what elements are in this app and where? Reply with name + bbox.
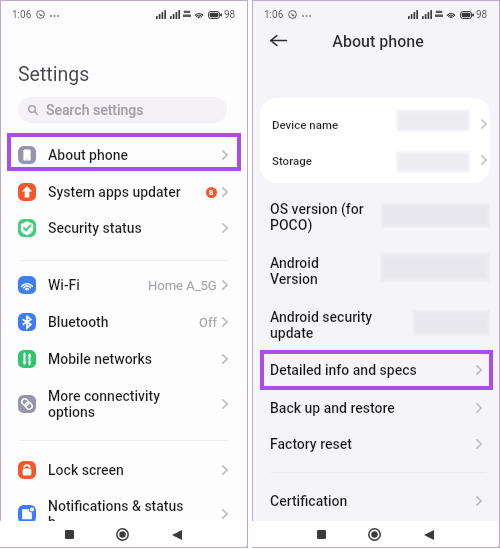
staticText: About phone	[48, 147, 222, 163]
button[interactable]: Notifications & status b	[18, 497, 228, 531]
staticText: About phone	[332, 32, 424, 51]
staticText: Certification	[270, 493, 476, 509]
button[interactable]: Bluetooth	[18, 305, 228, 339]
button[interactable]: Factory reset	[270, 428, 482, 460]
button[interactable]: System apps updater	[18, 175, 228, 209]
button[interactable]: Home	[111, 523, 134, 546]
button[interactable]: Wi-Fi	[18, 268, 228, 302]
staticText: Notifications & status b	[48, 498, 222, 530]
button[interactable]: Home	[363, 523, 386, 546]
staticText: 8	[209, 188, 214, 197]
button[interactable]: Back	[417, 523, 440, 546]
staticText: Search settings	[46, 102, 144, 118]
button[interactable]: Android Version	[270, 255, 390, 287]
button[interactable]: OS version (for POCO)	[270, 201, 390, 233]
button[interactable]: Recent apps	[58, 523, 81, 546]
button[interactable]: Back	[266, 28, 290, 52]
staticText: 1:06	[264, 9, 284, 21]
button[interactable]: Mobile networks	[18, 342, 228, 376]
staticText: Back up and restore	[270, 400, 476, 416]
button[interactable]: Search settings	[18, 97, 227, 123]
button[interactable]: Android security update	[270, 309, 390, 341]
button[interactable]: Lock screen	[18, 453, 228, 487]
staticText: Factory reset	[270, 436, 476, 452]
button[interactable]: More connectivity options	[18, 387, 228, 421]
staticText: Mobile networks	[48, 351, 222, 367]
staticText: Settings	[18, 63, 90, 86]
staticText: Off	[199, 315, 217, 330]
button[interactable]: Detailed info and specs	[270, 354, 482, 386]
button[interactable]: Security status	[18, 211, 228, 245]
staticText: 1:06	[12, 9, 32, 21]
staticText: Lock screen	[48, 462, 222, 478]
button[interactable]: Certification	[270, 485, 482, 517]
button[interactable]: About phone	[18, 138, 228, 172]
staticText: Device name	[272, 118, 339, 131]
button[interactable]: Recent apps	[310, 523, 333, 546]
staticText: Android security update	[270, 309, 373, 341]
staticText: 98	[476, 9, 488, 21]
staticText: 98	[224, 9, 236, 21]
button[interactable]: Device name	[272, 109, 487, 139]
staticText: Bluetooth	[48, 314, 199, 330]
button[interactable]: Storage	[272, 145, 487, 175]
staticText: More connectivity options	[48, 388, 222, 420]
button[interactable]: Back	[165, 523, 188, 546]
staticText: OS version (for POCO)	[270, 201, 364, 233]
staticText: Security status	[48, 220, 222, 236]
staticText: Storage	[272, 154, 312, 167]
staticText: Wi-Fi	[48, 277, 148, 293]
staticText: System apps updater	[48, 184, 206, 200]
staticText: Home A_5G	[148, 278, 217, 293]
staticText: Android Version	[270, 255, 319, 287]
button[interactable]: Back up and restore	[270, 392, 482, 424]
staticText: Detailed info and specs	[270, 362, 476, 378]
